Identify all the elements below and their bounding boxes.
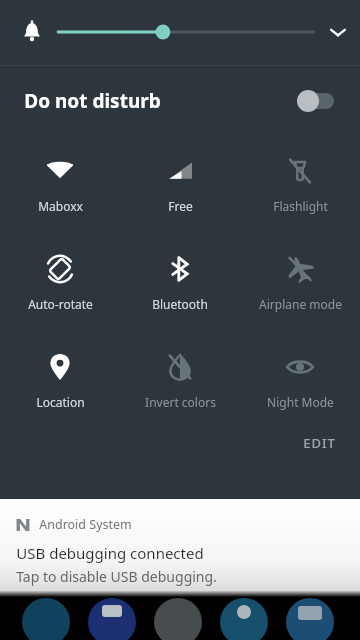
button[interactable]: Volume (58, 18, 314, 46)
button[interactable]: Invert colors (120, 352, 240, 410)
staticText: Flashlight (273, 198, 328, 214)
button[interactable]: Airplane mode (240, 254, 360, 312)
staticText: Invert colors (145, 394, 216, 410)
button[interactable]: EDIT (279, 426, 360, 460)
button[interactable]: Auto-rotate (0, 254, 120, 312)
staticText: EDIT (303, 434, 336, 452)
staticText: Airplane mode (259, 296, 342, 312)
button[interactable]: Do not disturb (0, 66, 360, 136)
staticText: Location (36, 394, 85, 410)
button[interactable]: Android System (0, 499, 360, 591)
button[interactable]: Location (0, 352, 120, 410)
button[interactable]: Ringer mode (12, 12, 52, 52)
other: Do not disturb toggle (296, 88, 336, 114)
button[interactable]: Flashlight (240, 156, 360, 214)
staticText: Bluetooth (152, 296, 208, 312)
staticText: Android System (39, 516, 132, 533)
staticText: Night Mode (267, 394, 334, 410)
button[interactable]: Free (120, 156, 240, 214)
staticText: USB debugging connected (16, 543, 204, 563)
button[interactable]: Maboxx (0, 156, 120, 214)
button[interactable]: Night Mode (240, 352, 360, 410)
staticText: Free (168, 198, 193, 214)
button[interactable]: Bluetooth (120, 254, 240, 312)
staticText: Tap to disable USB debugging. (16, 567, 217, 586)
button[interactable]: Expand (318, 12, 358, 52)
staticText: Do not disturb (24, 88, 161, 114)
staticText: Maboxx (38, 198, 83, 214)
staticText: Auto-rotate (28, 296, 93, 312)
